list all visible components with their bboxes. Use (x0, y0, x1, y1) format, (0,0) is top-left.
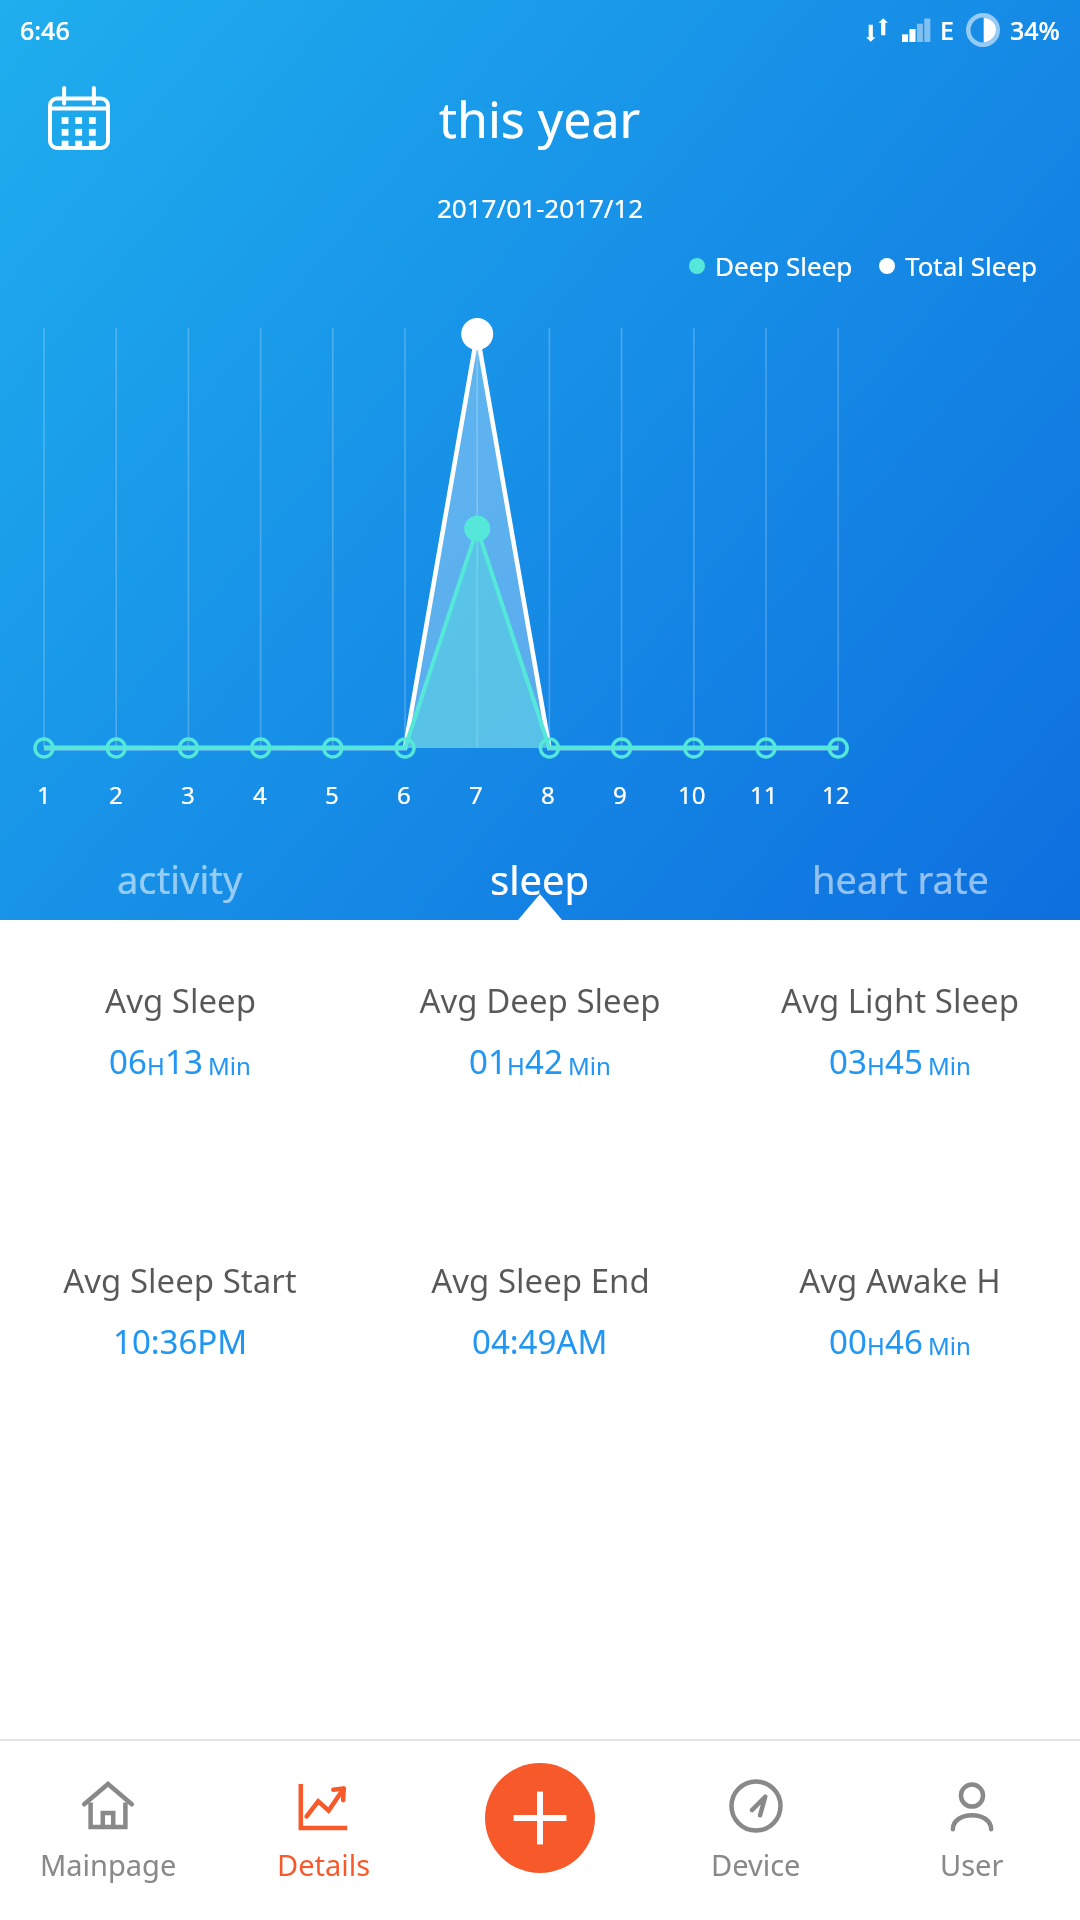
button[interactable]: User (864, 1740, 1080, 1920)
staticText: 2017/01-2017/12 (437, 190, 644, 225)
staticText: 03 (829, 1039, 867, 1084)
button[interactable]: Add (485, 1763, 595, 1873)
staticText: 2 (109, 778, 123, 811)
staticText: H (867, 1329, 885, 1362)
staticText: 6 (397, 778, 411, 811)
button[interactable]: Avg Light Sleep (720, 978, 1080, 1084)
button[interactable]: Avg Deep Sleep (360, 978, 720, 1084)
button[interactable]: Mainpage (0, 1740, 216, 1920)
button[interactable]: sleep (360, 838, 720, 920)
button[interactable]: Avg Awake H (720, 1258, 1080, 1364)
staticText: sleep (490, 852, 590, 906)
staticText: H (147, 1049, 165, 1082)
staticText: 10:36PM (113, 1319, 248, 1364)
button[interactable]: Avg Sleep End (360, 1258, 720, 1364)
staticText: 11 (750, 778, 778, 811)
staticText: 12 (822, 778, 850, 811)
staticText: 5 (325, 778, 339, 811)
staticText: Min (928, 1049, 971, 1082)
staticText: Min (568, 1049, 611, 1082)
staticText: Device (711, 1845, 801, 1884)
button[interactable]: activity (0, 838, 360, 920)
staticText: 4 (253, 778, 267, 811)
staticText: H (867, 1049, 885, 1082)
button[interactable]: Details (216, 1740, 432, 1920)
staticText: Min (928, 1329, 971, 1362)
staticText: 42 (525, 1039, 563, 1084)
staticText: 13 (165, 1039, 203, 1084)
staticText: 9 (613, 778, 627, 811)
staticText: Avg Light Sleep (781, 978, 1019, 1023)
staticText: 7 (469, 778, 483, 811)
button[interactable]: Avg Sleep Start (0, 1258, 360, 1364)
staticText: Min (208, 1049, 251, 1082)
button[interactable]: Device (648, 1740, 864, 1920)
staticText: 10 (678, 778, 706, 811)
staticText: Total Sleep (905, 248, 1038, 283)
staticText: 34% (1010, 13, 1060, 47)
staticText: 04:49AM (472, 1319, 608, 1364)
staticText: Avg Deep Sleep (419, 978, 661, 1023)
staticText: H (507, 1049, 525, 1082)
staticText: E (940, 13, 954, 47)
staticText: heart rate (812, 853, 989, 905)
button[interactable]: heart rate (720, 838, 1080, 920)
staticText: activity (117, 853, 243, 905)
staticText: Avg Sleep (105, 978, 256, 1023)
staticText: 3 (181, 778, 195, 811)
staticText: 45 (885, 1039, 923, 1084)
staticText: 00 (829, 1319, 867, 1364)
staticText: this year (439, 85, 641, 153)
staticText: 01 (469, 1039, 507, 1084)
button[interactable]: Avg Sleep (0, 978, 360, 1084)
staticText: 46 (885, 1319, 923, 1364)
staticText: 06 (109, 1039, 147, 1084)
button[interactable]: Calendar (48, 88, 110, 150)
staticText: Deep Sleep (715, 248, 853, 283)
staticText: Details (277, 1845, 371, 1884)
staticText: 8 (541, 778, 555, 811)
staticText: Avg Sleep End (431, 1258, 650, 1303)
staticText: Avg Sleep Start (63, 1258, 297, 1303)
staticText: Mainpage (40, 1845, 177, 1884)
staticText: 6:46 (20, 13, 70, 47)
staticText: Avg Awake H (799, 1258, 1001, 1303)
staticText: 1 (37, 778, 51, 811)
staticText: User (940, 1845, 1004, 1884)
